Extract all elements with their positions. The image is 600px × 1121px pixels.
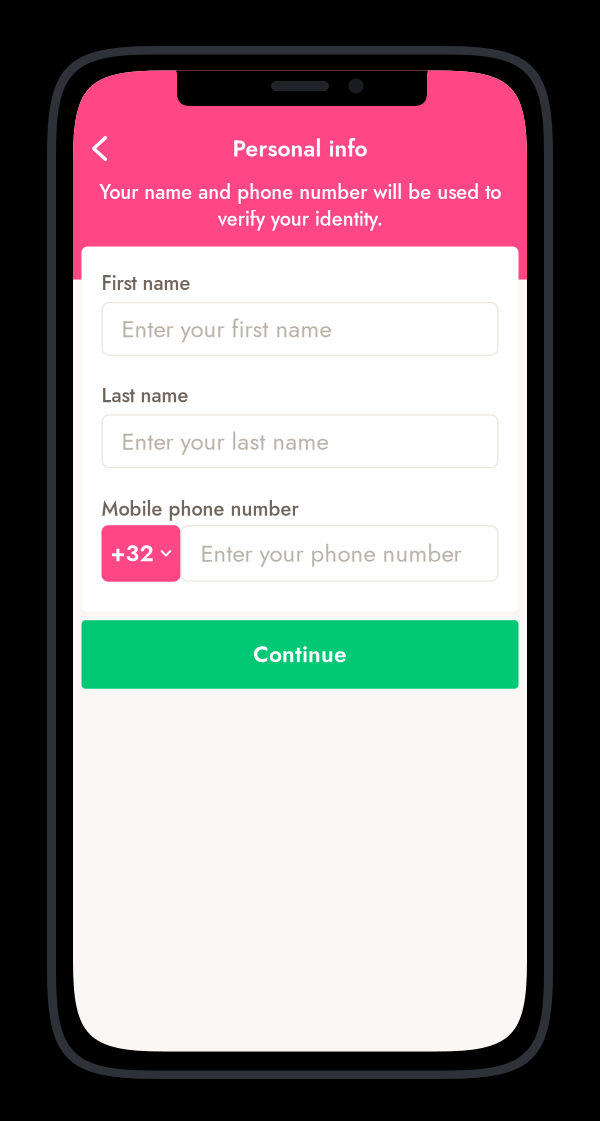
button[interactable]: Continue	[81, 620, 518, 689]
button[interactable]: Enter your phone number	[180, 525, 498, 582]
button[interactable]: Enter your first name	[101, 302, 498, 356]
staticText: +32	[110, 537, 153, 570]
staticText: Mobile phone number	[101, 494, 298, 523]
staticText: Enter your first name	[121, 312, 331, 346]
staticText: Enter your last name	[121, 424, 328, 459]
staticText: First name	[101, 268, 190, 297]
staticText: Personal info	[232, 132, 367, 165]
button[interactable]: Enter your last name	[101, 414, 498, 468]
button[interactable]: +32	[101, 525, 180, 582]
staticText: Enter your phone number	[200, 536, 461, 571]
staticText: Your name and phone number will be used …	[99, 177, 501, 233]
button[interactable]: Back	[73, 131, 140, 165]
staticText: Continue	[253, 638, 347, 671]
staticText: Last name	[101, 381, 188, 410]
